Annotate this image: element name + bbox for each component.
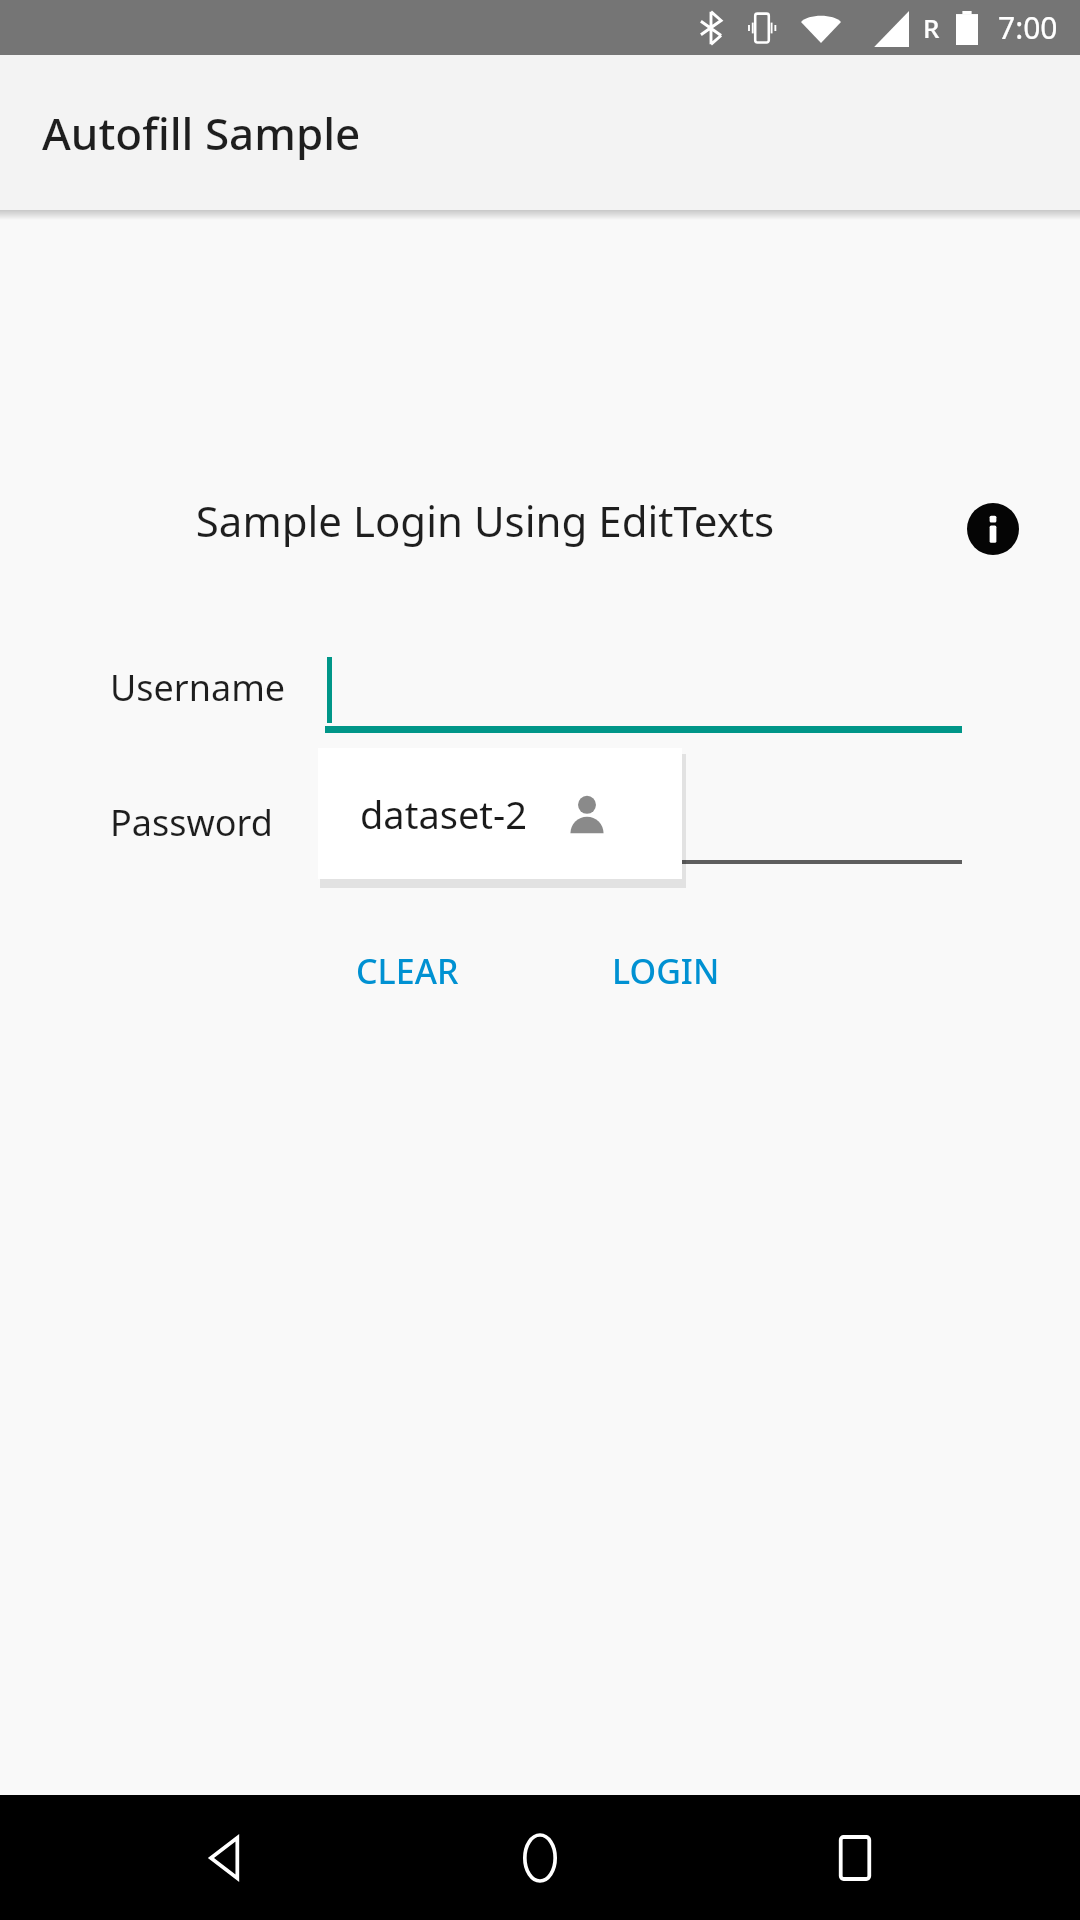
staticText: Password — [110, 798, 273, 847]
button[interactable]: Home — [485, 1803, 595, 1913]
button[interactable]: Recents — [800, 1803, 910, 1913]
button[interactable]: dataset-2 — [318, 748, 682, 879]
staticText: dataset-2 — [360, 788, 528, 840]
staticText: Sample Login Using EditTexts — [40, 492, 930, 549]
button[interactable] — [325, 860, 962, 864]
button[interactable]: Info — [962, 498, 1024, 560]
staticText: 7:00 — [998, 7, 1058, 48]
staticText: Username — [110, 663, 286, 712]
button[interactable]: CLEAR — [330, 938, 485, 1004]
button[interactable]: Back — [170, 1803, 280, 1913]
staticText: LOGIN — [612, 948, 720, 994]
staticText: CLEAR — [356, 948, 459, 994]
button[interactable]: LOGIN — [586, 938, 746, 1004]
staticText: Autofill Sample — [42, 103, 361, 163]
staticText: R — [923, 10, 940, 45]
